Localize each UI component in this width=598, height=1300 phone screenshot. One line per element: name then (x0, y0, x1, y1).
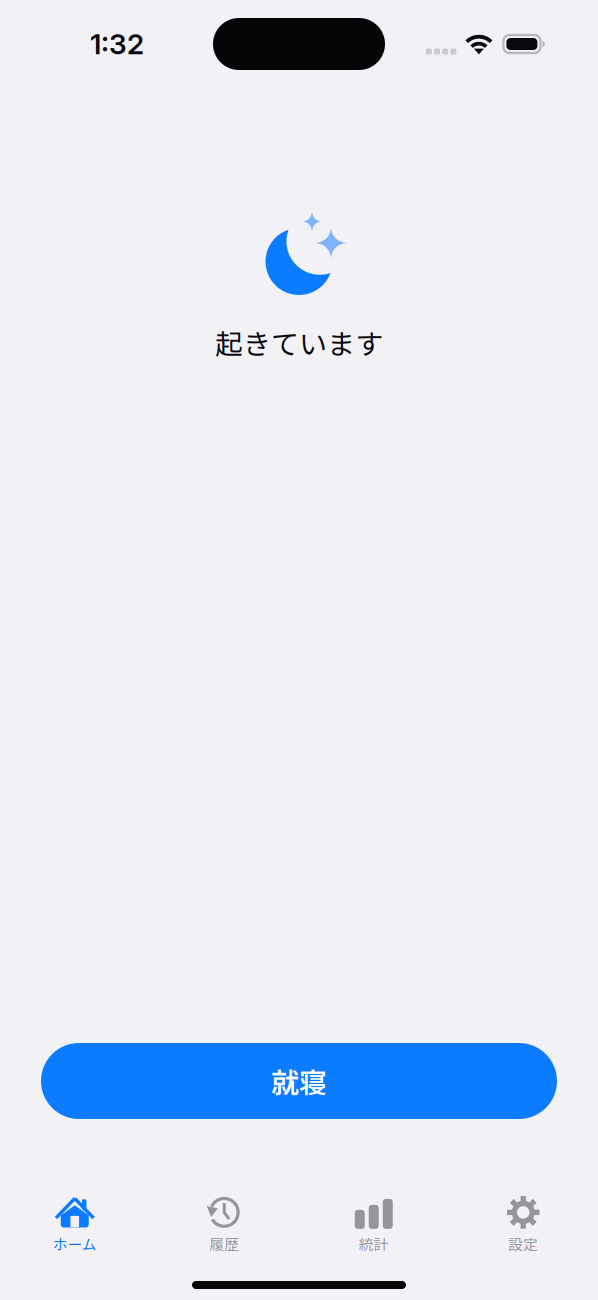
staticText: 統計 (359, 1233, 389, 1254)
staticText: 就寝 (271, 1061, 327, 1101)
button[interactable]: 設定 (448, 1189, 598, 1261)
staticText: 履歴 (209, 1233, 239, 1254)
button[interactable]: 就寝 (41, 1043, 557, 1119)
staticText: 設定 (508, 1233, 538, 1254)
button[interactable]: 統計 (299, 1189, 448, 1261)
staticText: ホーム (53, 1233, 97, 1254)
button[interactable]: ホーム (0, 1189, 149, 1261)
staticText: 起きています (215, 322, 383, 362)
staticText: 1:32 (90, 27, 144, 61)
button[interactable]: 履歴 (149, 1189, 299, 1261)
